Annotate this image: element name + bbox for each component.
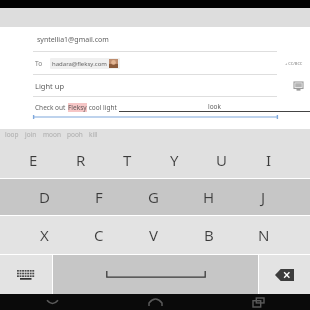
staticText: hadara@fleksy.com — [52, 60, 107, 68]
button[interactable]: Recent apps — [207, 294, 310, 310]
button[interactable]: Space — [53, 255, 258, 294]
button[interactable]: + CC/BCC — [282, 61, 306, 66]
staticText: R — [76, 150, 86, 170]
button[interactable]: Y — [151, 141, 198, 178]
staticText: Fleksy — [68, 103, 87, 112]
staticText: pooh — [67, 130, 83, 139]
button[interactable]: C — [71, 216, 126, 254]
button[interactable]: Home — [104, 294, 207, 310]
button[interactable]: R — [57, 141, 104, 178]
button[interactable]: V — [126, 216, 181, 254]
staticText: Check out — [35, 103, 68, 112]
staticText: Y — [170, 150, 179, 170]
button[interactable]: U — [198, 141, 245, 178]
staticText: E — [29, 150, 38, 170]
staticText: Light up — [35, 81, 65, 91]
staticText: D — [39, 187, 50, 207]
button[interactable]: I — [245, 141, 292, 178]
staticText: U — [216, 150, 227, 170]
staticText: To — [35, 59, 43, 68]
staticText: + CC/BCC — [285, 61, 303, 66]
button[interactable]: Light up — [0, 75, 310, 97]
staticText: T — [123, 150, 132, 170]
staticText: I — [266, 150, 272, 170]
staticText: kill — [89, 130, 98, 139]
staticText: moon — [43, 130, 61, 139]
staticText: cool light — [87, 103, 119, 112]
button[interactable]: join — [22, 130, 40, 139]
button[interactable]: pooh — [64, 130, 86, 139]
staticText: join — [25, 130, 37, 139]
button[interactable]: syntellia1@gmail.com — [0, 27, 310, 52]
staticText: H — [203, 187, 215, 207]
staticText: F — [95, 187, 103, 207]
button[interactable]: B — [181, 216, 236, 254]
button[interactable]: G — [126, 179, 181, 215]
button[interactable]: Backspace — [259, 255, 310, 294]
staticText: syntellia1@gmail.com — [37, 35, 109, 45]
button[interactable]: Attach image — [291, 79, 305, 93]
staticText: C — [94, 225, 104, 245]
button[interactable]: Switch keyboard — [0, 255, 52, 294]
button[interactable]: To — [0, 52, 310, 75]
button[interactable]: loop — [2, 130, 22, 139]
staticText: X — [40, 225, 49, 245]
staticText: V — [149, 225, 159, 245]
staticText: G — [148, 187, 159, 207]
button[interactable]: N — [236, 216, 291, 254]
button[interactable]: kill — [86, 130, 101, 139]
button[interactable]: Check out — [0, 97, 310, 117]
button[interactable]: Back — [0, 294, 104, 310]
staticText: B — [204, 225, 214, 245]
staticText: loop — [5, 130, 19, 139]
button[interactable]: D — [17, 179, 71, 215]
button[interactable]: X — [17, 216, 71, 254]
button[interactable]: T — [104, 141, 151, 178]
button[interactable]: F — [71, 179, 126, 215]
staticText: J — [261, 187, 266, 207]
staticText: N — [258, 225, 270, 245]
staticText: look — [208, 102, 222, 111]
button[interactable]: E — [10, 141, 57, 178]
button[interactable]: J — [236, 179, 291, 215]
button[interactable]: moon — [40, 130, 64, 139]
button[interactable]: H — [181, 179, 236, 215]
